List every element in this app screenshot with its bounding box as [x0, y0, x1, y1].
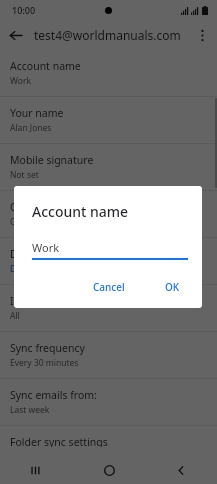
staticText: OK: [165, 280, 180, 294]
button[interactable]: Sync emails from:: [0, 379, 217, 426]
button[interactable]: OK: [157, 274, 188, 300]
staticText: Default account: [10, 247, 88, 261]
staticText: Account name: [10, 59, 81, 73]
button[interactable]: Mobile signature: [0, 144, 217, 191]
button[interactable]: Home: [73, 456, 145, 484]
staticText: Sync emails from:: [10, 388, 97, 402]
staticText: Inbox size: [10, 294, 60, 308]
staticText: Mobile signature: [10, 153, 94, 167]
staticText: Account name: [32, 202, 129, 221]
staticText: All: [10, 310, 20, 322]
staticText: Work: [32, 240, 60, 255]
button[interactable]: Your name: [0, 97, 217, 144]
button[interactable]: Default account: [0, 238, 217, 285]
button[interactable]: Cancel: [85, 274, 133, 300]
staticText: Every 30 minutes: [10, 357, 79, 369]
button[interactable]: Out of office: [0, 191, 217, 238]
button[interactable]: Inbox size: [0, 285, 217, 332]
staticText: Off: [10, 216, 23, 228]
button[interactable]: Back: [145, 456, 217, 484]
button[interactable]: More options: [187, 20, 217, 50]
staticText: Folder sync settings: [10, 435, 108, 447]
button[interactable]: Sync frequency: [0, 332, 217, 379]
staticText: Sync frequency: [10, 341, 85, 355]
staticText: Your name: [10, 106, 64, 120]
button[interactable]: Recent apps: [0, 456, 73, 484]
staticText: 10:00: [12, 4, 36, 16]
button[interactable]: Back: [0, 20, 30, 50]
button[interactable]: Folder sync settings: [0, 426, 217, 456]
staticText: Cancel: [93, 280, 125, 294]
staticText: Last week: [10, 404, 50, 416]
staticText: test4@worldmanuals.com: [34, 27, 181, 43]
staticText: Work: [10, 75, 31, 87]
staticText: Disabled: [10, 263, 45, 275]
button[interactable]: Account name: [0, 50, 217, 97]
staticText: Out of office: [10, 200, 72, 214]
staticText: Not set: [10, 169, 39, 181]
staticText: Alan Jones: [10, 122, 52, 134]
